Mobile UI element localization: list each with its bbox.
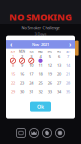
staticText: 21	[66, 71, 70, 77]
staticText: 7	[67, 54, 69, 59]
staticText: 26	[48, 80, 52, 85]
staticText: 27	[57, 80, 61, 85]
staticText: 23	[20, 80, 24, 85]
staticText: 22	[11, 80, 15, 85]
staticText: 10	[29, 63, 33, 68]
staticText: FRI	[57, 50, 61, 53]
staticText: THU	[47, 50, 52, 53]
staticText: 25	[38, 80, 42, 85]
button[interactable]: Support	[41, 127, 52, 138]
staticText: 13	[57, 63, 61, 68]
staticText: 6	[58, 54, 60, 59]
staticText: ›	[69, 40, 71, 49]
staticText: 16	[20, 71, 24, 77]
staticText: No Smoker Challenge	[21, 25, 59, 30]
staticText: SAT	[66, 50, 70, 53]
staticText: 33	[48, 89, 52, 94]
button[interactable]: Settings	[54, 127, 65, 138]
staticText: 20	[57, 71, 61, 77]
staticText: 9	[21, 63, 23, 68]
staticText: 14	[66, 63, 70, 68]
staticText: 3	[30, 54, 32, 59]
staticText: 2	[21, 54, 23, 59]
staticText: Ok	[37, 103, 44, 110]
staticText: 34	[57, 89, 61, 94]
staticText: 18	[38, 71, 42, 77]
staticText: 3 Days	[34, 31, 46, 37]
button[interactable]: Previous month	[6, 40, 16, 48]
staticText: MON	[19, 50, 25, 53]
staticText: 12	[48, 63, 52, 68]
staticText: 30	[20, 89, 24, 94]
staticText: 29	[11, 89, 15, 94]
staticText: 32	[38, 89, 42, 94]
staticText: 4	[39, 54, 41, 59]
staticText: 24	[29, 80, 33, 85]
staticText: SUN	[10, 50, 15, 53]
staticText: 31	[29, 89, 33, 94]
staticText: 11	[38, 63, 42, 68]
staticText: 15	[11, 71, 15, 77]
staticText: 17	[29, 71, 33, 77]
button[interactable]: Next month	[65, 40, 75, 48]
button[interactable]: Tracker	[15, 127, 26, 138]
staticText: 28	[66, 80, 70, 85]
staticText: 35	[66, 89, 70, 94]
staticText: 19	[48, 71, 52, 77]
staticText: NO SMOKING	[9, 11, 72, 23]
button[interactable]: Ok	[30, 102, 51, 112]
staticText: TUE	[29, 50, 33, 53]
staticText: 1	[12, 54, 14, 59]
staticText: 8	[12, 63, 14, 68]
staticText: WED	[38, 50, 43, 53]
staticText: ‹	[10, 40, 12, 49]
staticText: 5	[49, 54, 51, 59]
staticText: Nov 2021	[32, 42, 49, 47]
button[interactable]: Rewards	[28, 127, 39, 138]
